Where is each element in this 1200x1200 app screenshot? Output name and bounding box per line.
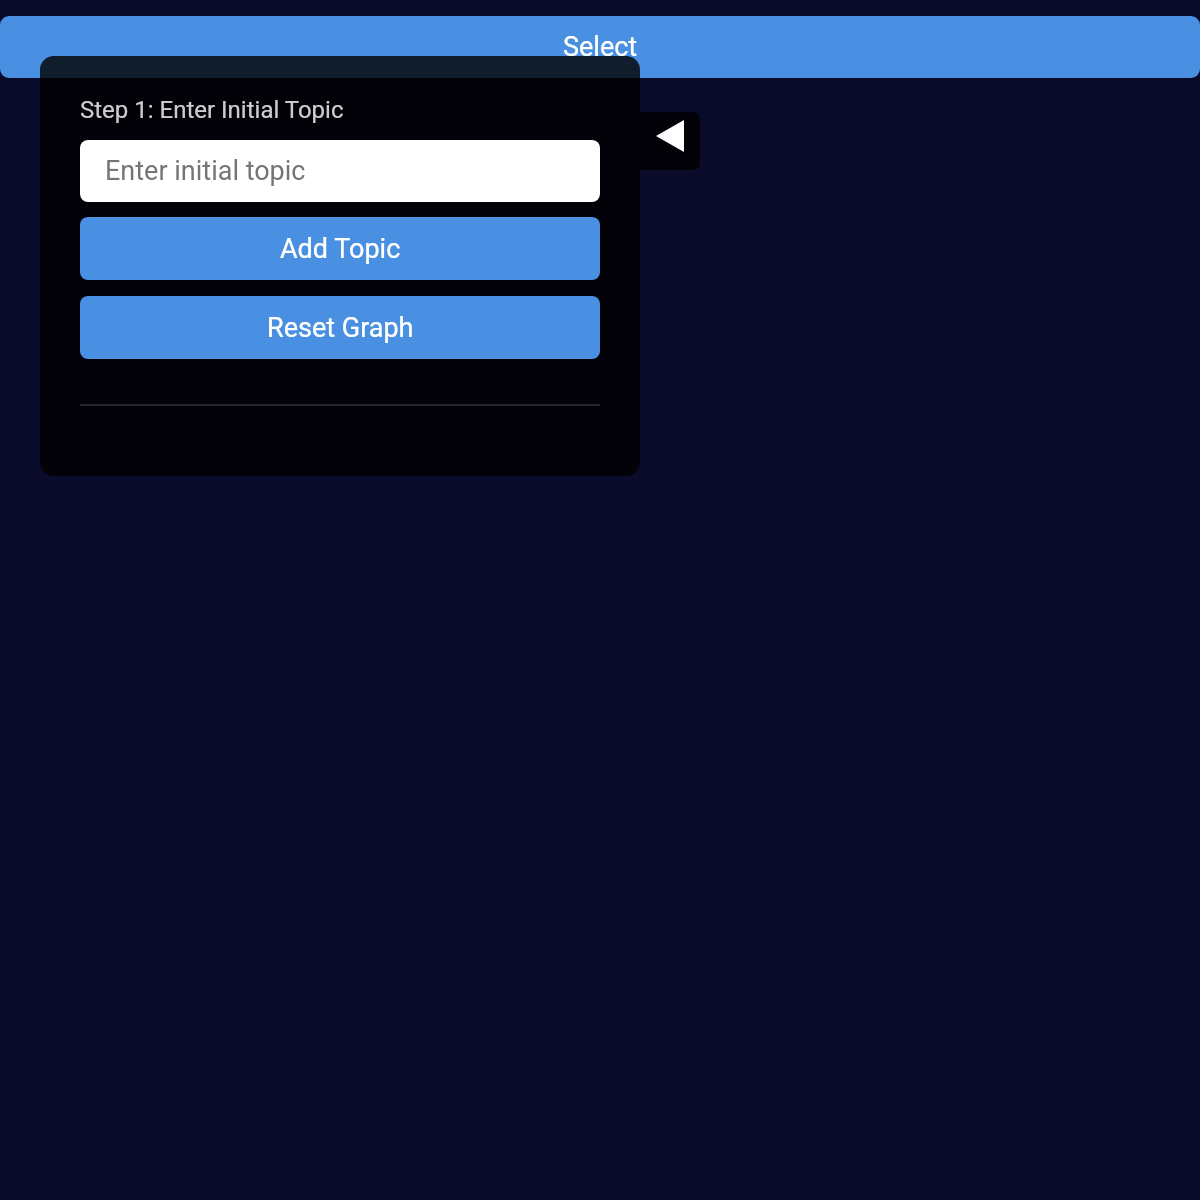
button[interactable]: Enter initial topic: [80, 140, 600, 202]
staticText: Step 1: Enter Initial Topic: [80, 96, 344, 124]
button[interactable]: Reset Graph: [80, 296, 600, 359]
staticText: Add Topic: [280, 233, 401, 265]
button[interactable]: Add Topic: [80, 217, 600, 280]
staticText: Enter initial topic: [105, 155, 306, 187]
button[interactable]: Collapse panel: [640, 112, 700, 170]
staticText: Reset Graph: [267, 312, 414, 344]
button[interactable]: Select: [0, 16, 1200, 78]
staticText: Select: [563, 31, 638, 63]
